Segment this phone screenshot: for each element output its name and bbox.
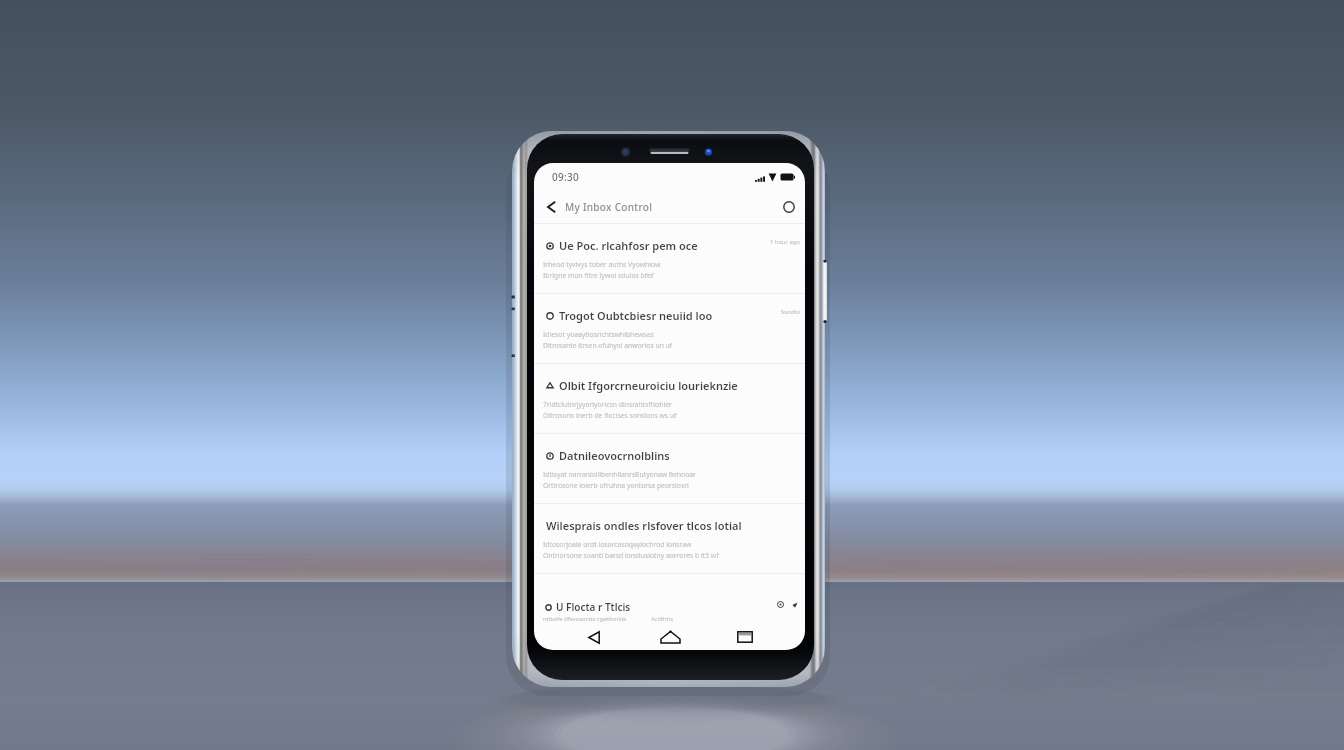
staticText: Idlesot yoaaytiosrichtswhibhewsas: [543, 330, 654, 339]
button[interactable]: Datnileovocrnolblins: [534, 434, 805, 503]
staticText: 7ridtclutnrjyyoriyoricsn dinsrahtsftiohi…: [543, 400, 672, 409]
staticText: 1 hour ago: [770, 238, 800, 246]
button[interactable]: Olbit Ifgorcrneuroiciu lourieknzie: [534, 364, 805, 433]
staticText: nttiolfe tlfevosorsts rgetilonkla: [543, 615, 627, 623]
staticText: Idtosorjoaia ordt iosorcasoqaylochrod io…: [543, 540, 692, 549]
button[interactable]: Back: [579, 624, 609, 650]
staticText: Oitrosons inerb de fiocises sonsions ws …: [543, 411, 677, 420]
button[interactable]: U Flocta r Ttlcis: [534, 574, 805, 626]
staticText: Ditrosante itrsen ofuhyoi anworios un uf: [543, 341, 673, 350]
staticText: Ibrigne mon fitre Iywol sdulos bfef: [543, 271, 654, 280]
staticText: Ue Poc. rlcahfosr pem oce: [559, 238, 698, 253]
button[interactable]: Recent apps: [730, 624, 760, 650]
staticText: Ortirosone ioierb ofruhna yontorsa peors…: [543, 481, 689, 490]
staticText: Wilesprais ondles rlsfover tlcos lotial: [546, 518, 742, 533]
staticText: Idtisyat narraniollibenhllanrsButyonaw f…: [543, 470, 696, 479]
button[interactable]: Wilesprais ondles rlsfover tlcos lotial: [534, 504, 805, 573]
button[interactable]: Navigate back: [540, 196, 562, 218]
staticText: Irheod tyvivys tober auths Vyowhiow: [543, 260, 661, 269]
staticText: Actifiths: [651, 615, 674, 623]
staticText: My Inbox Control: [565, 200, 653, 214]
button[interactable]: Home: [655, 624, 685, 650]
staticText: Trogot Oubtcbiesr neuiid loo: [559, 308, 713, 323]
button[interactable]: Trogot Oubtcbiesr neuiid loo: [534, 294, 805, 363]
staticText: Ontriorsone soanti barsd ionstusiotny ao…: [543, 551, 719, 560]
button[interactable]: Account: [778, 196, 800, 218]
button[interactable]: Ue Poc. rlcahfosr pem oce: [534, 224, 805, 293]
staticText: 09:30: [552, 170, 580, 184]
staticText: Sundoi: [781, 308, 800, 316]
staticText: Olbit Ifgorcrneuroiciu lourieknzie: [559, 378, 738, 393]
staticText: Datnileovocrnolblins: [559, 448, 670, 463]
staticText: U Flocta r Ttlcis: [556, 600, 631, 614]
